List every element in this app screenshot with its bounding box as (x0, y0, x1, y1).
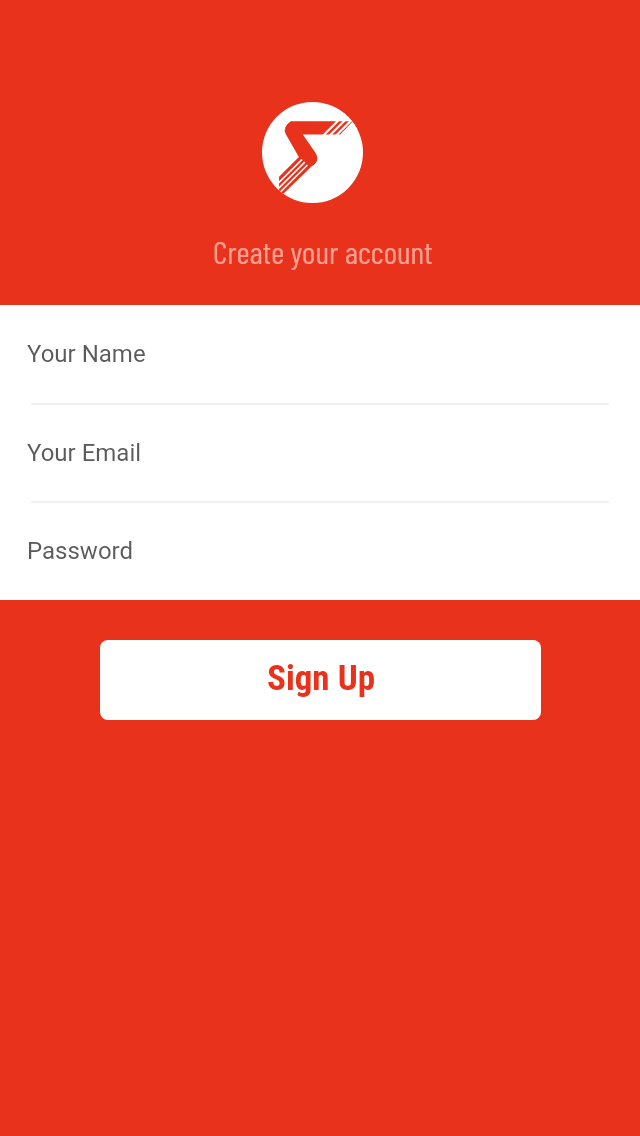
staticText: Password (27, 537, 134, 565)
button[interactable]: Password (0, 502, 640, 600)
other: App logo (262, 102, 363, 203)
button[interactable]: Your Name (0, 305, 640, 403)
staticText: Create your account (213, 232, 433, 270)
staticText: Your Name (27, 340, 146, 368)
staticText: Sign Up (267, 658, 375, 699)
staticText: Your Email (27, 439, 142, 467)
button[interactable]: Your Email (0, 404, 640, 502)
button[interactable]: Sign Up (100, 640, 541, 720)
